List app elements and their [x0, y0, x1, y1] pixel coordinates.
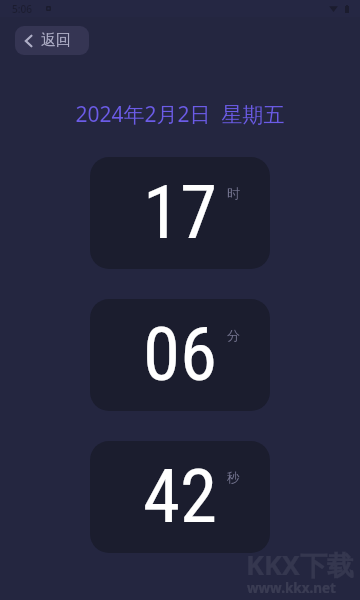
staticText: 分	[227, 327, 240, 343]
staticText: KKX下载	[246, 546, 354, 583]
staticText: 42	[143, 452, 218, 540]
staticText: 时	[227, 185, 240, 201]
staticText: 返回	[41, 31, 71, 50]
button[interactable]: 06	[90, 299, 270, 411]
button[interactable]: 17	[90, 157, 270, 269]
staticText: 17	[143, 168, 218, 256]
staticText: 5:06	[12, 2, 32, 16]
staticText: 2024年2月2日 星期五	[0, 100, 360, 129]
staticText: www.kkx.net	[247, 579, 336, 597]
button[interactable]: 42	[90, 441, 270, 553]
button[interactable]: 返回	[15, 26, 89, 55]
staticText: 06	[143, 310, 218, 398]
staticText: 秒	[227, 469, 240, 485]
